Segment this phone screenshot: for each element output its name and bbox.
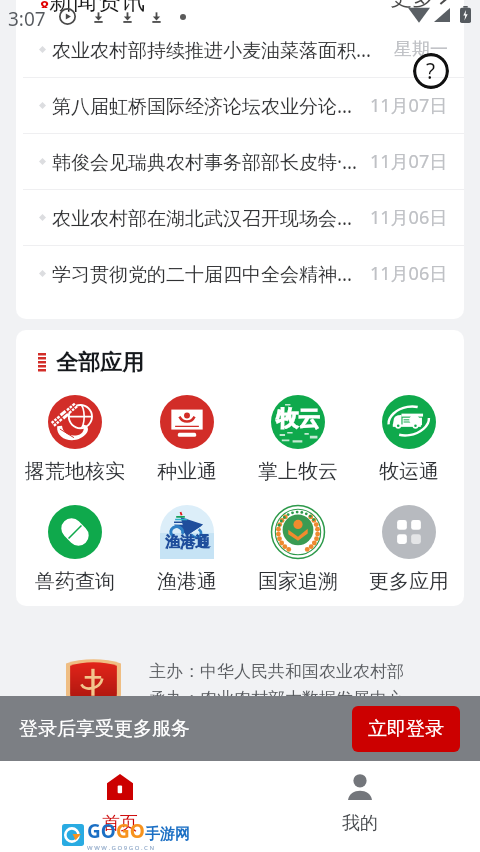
staticText: 11月06日 [370, 261, 448, 286]
staticText: 3:07 [8, 6, 46, 32]
staticText: 我的 [342, 812, 378, 835]
staticText: 掌上牧云 [258, 459, 338, 484]
button[interactable]: 种业通 [131, 395, 242, 484]
button[interactable]: 农业农村部在湖北武汉召开现场会… [16, 190, 464, 245]
button[interactable]: 第八届虹桥国际经济论坛农业分论… [16, 78, 464, 133]
staticText: 全部应用 [56, 349, 144, 377]
staticText: 学习贯彻党的二十届四中全会精神… [52, 261, 366, 287]
staticText: 版权所有：中华人民共和国农业农村部 [149, 715, 438, 736]
staticText: 农业农村部持续推进小麦油菜落面积… [52, 37, 390, 63]
staticText: 国家追溯 [258, 569, 338, 594]
button[interactable]: 立即登录 [352, 706, 460, 752]
staticText: 登录后享受更多服务 [19, 717, 190, 741]
button[interactable]: 韩俊会见瑞典农村事务部部长皮特·… [16, 134, 464, 189]
staticText: ? [426, 57, 436, 86]
button[interactable]: 更多应用 [353, 505, 464, 594]
staticText: 首页 [102, 812, 138, 835]
staticText: 兽药查询 [35, 569, 115, 594]
button[interactable]: 学习贯彻党的二十届四中全会精神… [16, 246, 464, 301]
staticText: 撂荒地核实 [25, 459, 125, 484]
staticText: 渔港通 [157, 569, 217, 594]
button[interactable]: Help [413, 53, 449, 89]
staticText: 更多应用 [369, 569, 449, 594]
button[interactable]: 渔港通 [131, 505, 242, 594]
staticText: 韩俊会见瑞典农村事务部部长皮特·… [52, 149, 366, 175]
button[interactable]: 撂荒地核实 [19, 395, 131, 484]
staticText: 手游网 [145, 825, 190, 844]
staticText: W W W . G O 9 G O . C N [87, 844, 155, 852]
staticText: 农业农村部在湖北武汉召开现场会… [52, 205, 366, 231]
staticText: 承办：农业农村部大数据发展中心 [149, 688, 404, 709]
staticText: 11月07日 [370, 93, 448, 118]
staticText: 新闻资讯 [49, 0, 145, 12]
button[interactable]: 牧运通 [353, 395, 464, 484]
button[interactable]: 兽药查询 [19, 505, 131, 594]
staticText: 牧运通 [379, 459, 439, 484]
staticText: GO [116, 818, 145, 844]
staticText: 种业通 [157, 459, 217, 484]
staticText: 渔港通 [165, 533, 210, 552]
staticText: 主办：中华人民共和国农业农村部 [149, 661, 404, 682]
staticText: GO [87, 818, 116, 844]
staticText: 第八届虹桥国际经济论坛农业分论… [52, 93, 366, 119]
button[interactable]: 国家追溯 [242, 505, 353, 594]
staticText: 立即登录 [368, 717, 444, 741]
staticText: 牧云 [276, 405, 320, 433]
staticText: 11月06日 [370, 205, 448, 230]
button[interactable]: 农业农村部持续推进小麦油菜落面积… [16, 22, 464, 77]
button[interactable]: 牧云 [242, 395, 353, 484]
button[interactable]: 我的 [240, 761, 480, 852]
staticText: 11月07日 [370, 149, 448, 174]
staticText: 星期一 [394, 38, 448, 61]
staticText: 更多 [390, 0, 434, 10]
button[interactable]: 首页 [0, 761, 240, 852]
staticText: 8 [40, 0, 50, 8]
